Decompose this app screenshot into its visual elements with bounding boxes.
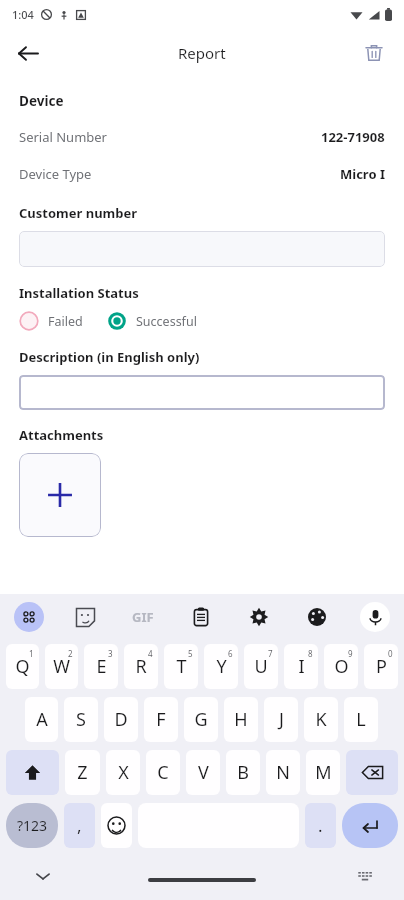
staticText: 122-71908 [321, 128, 385, 146]
button[interactable]: L [344, 697, 378, 742]
staticText: I [298, 654, 305, 679]
button[interactable]: K [304, 697, 338, 742]
staticText: L [356, 707, 366, 732]
staticText: O [334, 654, 349, 679]
staticText: GIF [132, 608, 154, 626]
button[interactable]: X [106, 750, 140, 795]
button[interactable]: V [186, 750, 220, 795]
button[interactable]: U [244, 644, 278, 689]
button[interactable]: Z [65, 750, 100, 795]
staticText: K [315, 707, 327, 732]
button[interactable]: Q [6, 644, 39, 689]
staticText: Device [19, 92, 64, 110]
staticText: C [157, 760, 169, 785]
button[interactable]: Enter [342, 803, 398, 848]
button[interactable]: I [284, 644, 318, 689]
button[interactable]: E [84, 644, 118, 689]
staticText: Report [178, 43, 226, 63]
button[interactable]: Themes [288, 594, 346, 640]
staticText: M [315, 760, 332, 785]
staticText: W [53, 654, 70, 679]
staticText: N [276, 760, 290, 785]
button[interactable]: Change keyboard [350, 861, 380, 891]
button[interactable]: Stickers [57, 594, 114, 640]
staticText: 5 [188, 648, 193, 659]
staticText: R [135, 654, 147, 679]
staticText: 1:04 [12, 7, 34, 22]
button[interactable]: GIF [114, 594, 172, 640]
staticText: Customer number [19, 204, 138, 222]
button[interactable]: Successful [107, 311, 197, 331]
staticText: P [376, 654, 387, 679]
button[interactable]: Add attachment [19, 453, 101, 537]
button[interactable]: T [164, 644, 198, 689]
staticText: Successful [136, 313, 197, 330]
button[interactable]: Emoji [101, 803, 132, 848]
staticText: U [254, 654, 268, 679]
button[interactable]: Shift [6, 750, 59, 795]
staticText: , [77, 814, 82, 837]
button[interactable]: Voice input [346, 594, 404, 640]
staticText: S [76, 707, 86, 732]
button[interactable]: Toolbar menu [0, 594, 57, 640]
button[interactable]: S [64, 697, 98, 742]
button[interactable]: O [324, 644, 358, 689]
button[interactable]: Back [8, 33, 48, 73]
staticText: V [198, 760, 209, 785]
button[interactable]: M [306, 750, 340, 795]
staticText: Description (in English only) [19, 348, 200, 366]
staticText: A [36, 707, 48, 732]
button[interactable]: C [146, 750, 180, 795]
button[interactable]: Y [204, 644, 238, 689]
staticText: E [96, 654, 107, 679]
staticText: Attachments [19, 426, 104, 444]
button[interactable]: D [104, 697, 138, 742]
staticText: 6 [228, 648, 233, 659]
button[interactable]: A [25, 697, 58, 742]
button[interactable]: . [305, 803, 336, 848]
button[interactable]: H [224, 697, 258, 742]
button[interactable]: P [364, 644, 398, 689]
button[interactable] [19, 231, 385, 267]
button[interactable]: , [64, 803, 95, 848]
staticText: ?123 [17, 816, 48, 835]
button[interactable]: W [45, 644, 78, 689]
button[interactable] [19, 375, 385, 410]
staticText: G [194, 707, 208, 732]
staticText: 3 [108, 648, 113, 659]
staticText: Z [77, 760, 88, 785]
staticText: Q [15, 654, 30, 679]
button[interactable]: G [184, 697, 218, 742]
staticText: 8 [308, 648, 313, 659]
button[interactable]: F [144, 697, 178, 742]
button[interactable]: R [124, 644, 158, 689]
staticText: X [118, 760, 129, 785]
staticText: 2 [68, 648, 73, 659]
staticText: 1 [29, 648, 34, 659]
staticText: Failed [48, 313, 83, 330]
staticText: F [156, 707, 166, 732]
button[interactable]: Hide keyboard [28, 861, 58, 891]
button[interactable]: Backspace [346, 750, 398, 795]
button[interactable]: Clipboard [172, 594, 230, 640]
button[interactable]: Settings [230, 594, 288, 640]
staticText: H [234, 707, 248, 732]
staticText: . [318, 814, 323, 837]
staticText: 4 [148, 648, 153, 659]
staticText: 9 [348, 648, 353, 659]
button[interactable]: N [266, 750, 300, 795]
staticText: J [279, 707, 284, 732]
staticText: B [237, 760, 249, 785]
button[interactable]: ?123 [6, 803, 58, 848]
button[interactable]: B [226, 750, 260, 795]
button[interactable]: Delete report [354, 33, 394, 73]
staticText: Device Type [19, 165, 92, 183]
staticText: 0 [388, 648, 393, 659]
staticText: Installation Status [19, 284, 139, 302]
button[interactable]: Failed [19, 311, 83, 331]
staticText: D [114, 707, 128, 732]
staticText: 7 [268, 648, 273, 659]
button[interactable]: J [264, 697, 298, 742]
staticText: Y [216, 654, 227, 679]
